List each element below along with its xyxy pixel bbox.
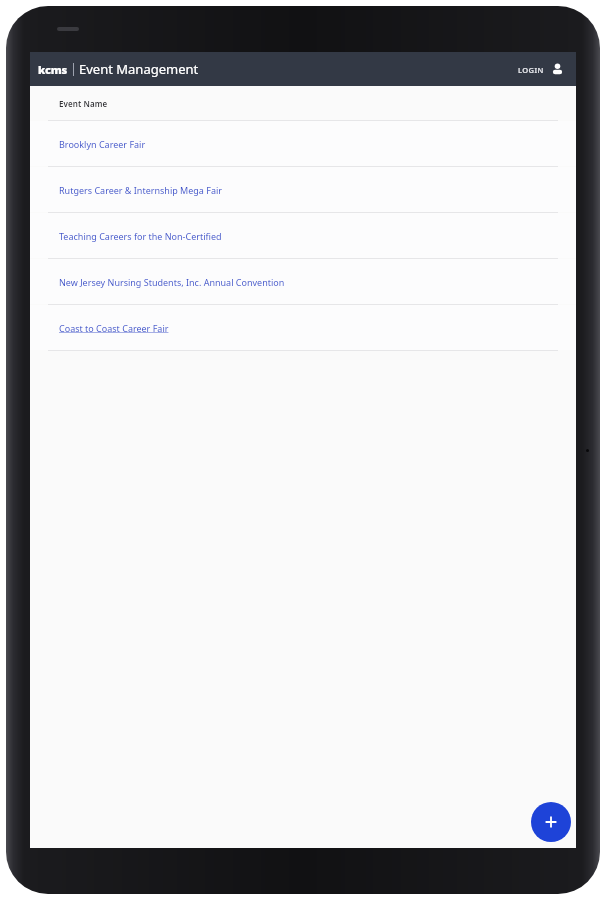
button[interactable]: New Jersey Nursing Students, Inc. Annual… bbox=[30, 259, 576, 304]
button[interactable]: Teaching Careers for the Non-Certified bbox=[30, 213, 576, 258]
button[interactable]: LOGIN bbox=[516, 58, 567, 81]
button[interactable]: Coast to Coast Career Fair bbox=[30, 305, 576, 350]
staticText: Coast to Coast Career Fair bbox=[59, 322, 169, 334]
staticText: Teaching Careers for the Non-Certified bbox=[59, 230, 222, 242]
staticText: New Jersey Nursing Students, Inc. Annual… bbox=[59, 276, 285, 288]
staticText: Brooklyn Career Fair bbox=[59, 138, 146, 150]
button[interactable]: Add event bbox=[531, 802, 571, 842]
button[interactable]: Rutgers Career & Internship Mega Fair bbox=[30, 167, 576, 212]
staticText: Event Management bbox=[79, 60, 199, 78]
button[interactable]: Brooklyn Career Fair bbox=[30, 121, 576, 166]
staticText: kcms bbox=[38, 62, 68, 77]
staticText: Event Name bbox=[59, 98, 108, 109]
staticText: LOGIN bbox=[518, 65, 544, 75]
staticText: Rutgers Career & Internship Mega Fair bbox=[59, 184, 223, 196]
